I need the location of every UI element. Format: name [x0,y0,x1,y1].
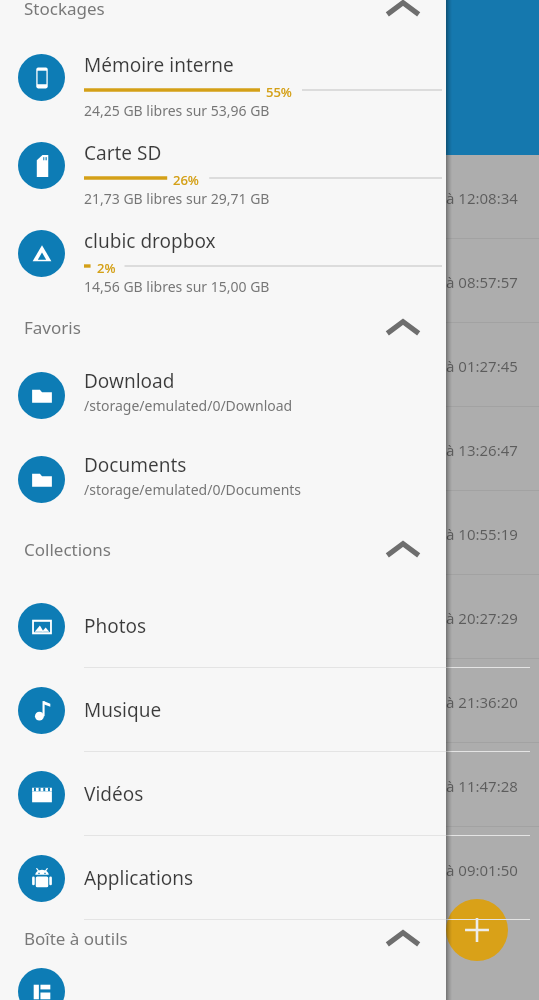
staticText: à 11:47:28 [446,776,518,796]
button[interactable]: Carte SD [0,140,446,224]
button[interactable]: Mémoire interne [0,52,446,136]
staticText: Stockages [24,0,105,20]
button[interactable]: à 01:27:45 [0,323,539,407]
staticText: clubic dropbox [84,228,216,254]
other: Réduire Collections [386,538,420,560]
button[interactable]: Ajouter [446,899,508,961]
button[interactable]: Photos [0,584,446,668]
staticText: 24,25 GB libres sur 53,96 GB [84,101,270,120]
staticText: Collections [24,538,112,561]
button[interactable]: à 08:57:57 [0,239,539,323]
button[interactable]: à 12:08:34 [0,155,539,239]
staticText: à 13:26:47 [446,440,518,460]
staticText: /storage/emulated/0/Documents [84,480,302,499]
staticText: /storage/emulated/0/Download [84,396,293,415]
button[interactable]: Download [0,362,446,446]
staticText: à 09:01:50 [446,860,518,880]
staticText: Photos [84,613,147,639]
button[interactable]: à 20:27:29 [0,575,539,659]
button[interactable]: Applications [0,836,446,920]
staticText: à 20:27:29 [446,608,518,628]
button[interactable]: à 09:01:50 [0,827,539,911]
other: Réduire Boîte à outils [386,927,420,949]
button[interactable]: clubic dropbox [0,228,446,312]
button[interactable]: Stockages [0,0,446,25]
button[interactable]: Documents [0,446,446,530]
button[interactable]: Boîte à outils [0,921,446,955]
staticText: à 10:55:19 [446,524,518,544]
other: Réduire Favoris [386,316,420,338]
staticText: Vidéos [84,781,144,807]
staticText: Musique [84,697,162,723]
staticText: 26% [173,171,199,185]
staticText: Mémoire interne [84,52,234,78]
button[interactable]: Musique [0,668,446,752]
staticText: Favoris [24,316,81,339]
button[interactable]: à 10:55:19 [0,491,539,575]
staticText: Download [84,368,175,394]
staticText: Documents [84,452,187,478]
button[interactable]: à 11:47:28 [0,743,539,827]
other: Réduire Stockages [386,0,420,19]
staticText: Boîte à outils [24,927,128,950]
staticText: 14,56 GB libres sur 15,00 GB [84,277,270,296]
staticText: à 21:36:20 [446,692,518,712]
button[interactable]: Collections [0,532,446,566]
staticText: à 08:57:57 [446,272,518,292]
staticText: 21,73 GB libres sur 29,71 GB [84,189,270,208]
staticText: à 01:27:45 [446,356,518,376]
staticText: Applications [84,865,194,891]
button[interactable]: Favoris [0,310,446,344]
staticText: à 12:08:34 [446,188,518,208]
staticText: 2% [97,259,116,273]
staticText: 55% [266,83,292,97]
button[interactable]: à 21:36:20 [0,659,539,743]
button[interactable]: à 13:26:47 [0,407,539,491]
button[interactable]: Vidéos [0,752,446,836]
staticText: Carte SD [84,140,162,166]
